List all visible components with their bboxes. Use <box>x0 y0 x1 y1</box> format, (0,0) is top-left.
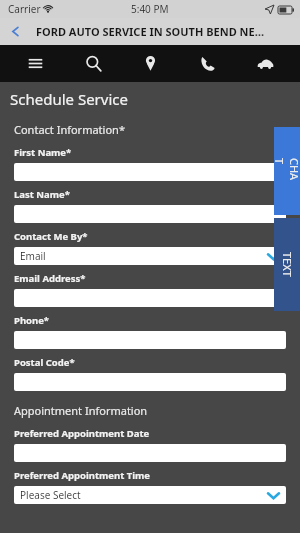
button[interactable]: CHAT <box>274 127 300 215</box>
staticText: Postal Code* <box>14 356 75 369</box>
button[interactable] <box>14 444 286 462</box>
button[interactable] <box>14 289 286 307</box>
staticText: Carrier <box>8 2 41 16</box>
staticText: Contact Information* <box>14 122 125 137</box>
staticText: Contact Me By* <box>14 230 88 243</box>
staticText: Please Select <box>20 488 81 502</box>
button[interactable]: Back <box>0 18 30 45</box>
button[interactable]: Vehicles <box>243 45 287 82</box>
staticText: Email <box>20 249 46 263</box>
staticText: Preferred Appointment Date <box>14 427 150 440</box>
staticText: First Name* <box>14 146 72 159</box>
button[interactable] <box>14 373 286 391</box>
staticText: TEXT <box>280 252 295 277</box>
staticText: Preferred Appointment Time <box>14 469 151 482</box>
staticText: Appointment Information <box>14 403 148 418</box>
staticText: Email Address* <box>14 272 86 285</box>
button[interactable]: Locations <box>128 45 172 82</box>
button[interactable]: Please Select <box>14 486 286 504</box>
staticText: Last Name* <box>14 188 70 201</box>
button[interactable]: Search <box>71 45 115 82</box>
staticText: CHAT <box>272 158 300 184</box>
staticText: 5:40 PM <box>131 2 169 16</box>
button[interactable] <box>14 205 286 223</box>
button[interactable] <box>14 163 286 181</box>
button[interactable]: TEXT <box>274 218 300 311</box>
button[interactable]: Menu <box>13 45 57 82</box>
button[interactable] <box>14 331 286 349</box>
staticText: FORD AUTO SERVICE IN SOUTH BEND NE… <box>36 24 265 39</box>
staticText: Schedule Service <box>10 89 128 109</box>
button[interactable]: Email <box>14 247 286 265</box>
button[interactable]: Call <box>185 45 229 82</box>
staticText: Phone* <box>14 314 50 327</box>
